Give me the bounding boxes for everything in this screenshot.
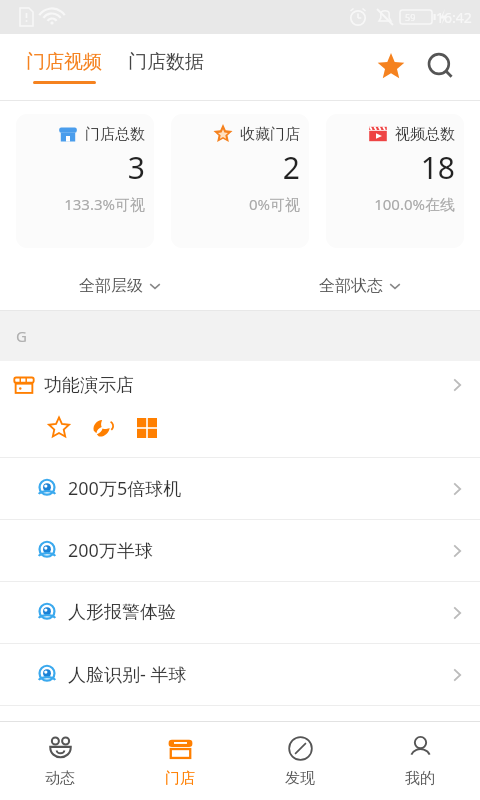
staticText: 18	[335, 147, 455, 188]
button[interactable]: 门店数据	[126, 46, 206, 88]
staticText: 200万半球	[68, 538, 153, 563]
staticText: 2	[180, 147, 300, 188]
button[interactable]: 全部状态	[240, 262, 480, 310]
button[interactable]: 门店视频	[24, 46, 104, 88]
staticText: 视频总数	[395, 125, 455, 144]
staticText: 100.0%在线	[335, 194, 455, 214]
staticText: 门店视频	[26, 50, 102, 74]
button[interactable]: 人脸识别- 半球	[0, 644, 480, 705]
staticText: 人形报警体验	[68, 601, 176, 624]
staticText: 3	[25, 147, 145, 188]
staticText: 门店总数	[85, 125, 145, 144]
staticText: 功能演示店	[44, 374, 134, 397]
staticText: 全部状态	[319, 276, 383, 296]
button[interactable]: 功能演示店	[0, 361, 480, 457]
staticText: 收藏门店	[240, 125, 300, 144]
staticText: G	[16, 326, 27, 346]
button[interactable]: 收藏门店	[171, 114, 309, 248]
staticText: 人脸识别- 半球	[68, 662, 187, 687]
button[interactable]: 门店	[120, 722, 240, 800]
button[interactable]: 全部层级	[0, 262, 240, 310]
staticText: 发现	[285, 769, 315, 788]
staticText: 59	[405, 11, 416, 23]
button[interactable]: 200万5倍球机	[0, 458, 480, 519]
staticText: 我的	[405, 769, 435, 788]
staticText: 200万5倍球机	[68, 476, 182, 501]
button[interactable]: Favorites	[370, 46, 412, 88]
button[interactable]: 门店总数	[16, 114, 154, 248]
staticText: 门店数据	[128, 50, 204, 74]
button[interactable]: 200万半球	[0, 520, 480, 581]
staticText: 门店	[165, 769, 195, 788]
button[interactable]: Grid view	[130, 411, 164, 445]
staticText: 16:42	[436, 8, 472, 27]
button[interactable]: 发现	[240, 722, 360, 800]
button[interactable]: Favorite store	[42, 411, 76, 445]
staticText: 0%可视	[180, 194, 300, 214]
staticText: 133.3%可视	[25, 194, 145, 214]
staticText: 动态	[45, 769, 75, 788]
staticText: 全部层级	[79, 276, 143, 296]
button[interactable]: 我的	[360, 722, 480, 800]
button[interactable]: 人形报警体验	[0, 582, 480, 643]
button[interactable]: 动态	[0, 722, 120, 800]
button[interactable]: 视频总数	[326, 114, 464, 248]
button[interactable]: Call store	[86, 411, 120, 445]
button[interactable]: Search	[420, 46, 462, 88]
